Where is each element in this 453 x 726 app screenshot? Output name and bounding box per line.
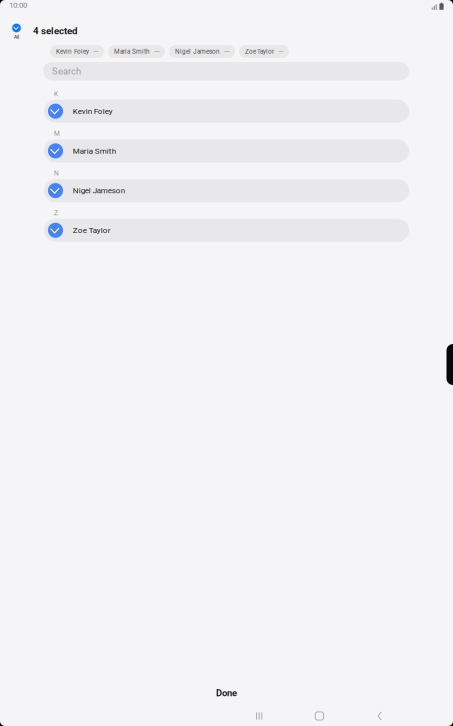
staticText: 4 selected xyxy=(33,25,77,37)
staticText: Search xyxy=(52,66,81,77)
staticText: Zoe Taylor xyxy=(73,226,111,235)
staticText: K xyxy=(54,90,58,98)
button[interactable]: Maria Smith xyxy=(108,45,165,58)
button[interactable]: Zoe Taylor xyxy=(44,219,409,242)
staticText: Nigel Jameson xyxy=(73,186,125,195)
button[interactable]: Done xyxy=(0,676,453,706)
button[interactable]: Recent apps xyxy=(229,706,289,726)
button[interactable]: Zoe Taylor xyxy=(239,45,289,58)
button[interactable]: Home xyxy=(289,706,349,726)
staticText: Done xyxy=(216,687,237,698)
staticText: All xyxy=(14,34,19,40)
button[interactable]: Back xyxy=(349,706,410,726)
button[interactable]: Nigel Jameson xyxy=(44,179,409,202)
button[interactable]: Select all xyxy=(4,13,28,43)
button[interactable]: Kevin Foley xyxy=(50,45,104,58)
staticText: Kevin Foley xyxy=(56,48,89,55)
staticText: M xyxy=(54,130,60,137)
button[interactable]: Maria Smith xyxy=(44,139,409,162)
staticText: Z xyxy=(54,209,58,217)
staticText: Kevin Foley xyxy=(73,106,113,116)
button[interactable]: Search xyxy=(43,62,409,80)
staticText: Zoe Taylor xyxy=(245,48,274,55)
button[interactable]: Nigel Jameson xyxy=(169,45,235,58)
staticText: Nigel Jameson xyxy=(175,48,220,55)
staticText: Maria Smith xyxy=(114,48,150,55)
button[interactable]: Kevin Foley xyxy=(44,100,409,123)
staticText: N xyxy=(54,169,59,177)
staticText: Maria Smith xyxy=(73,146,116,156)
staticText: 10:00 xyxy=(9,0,27,10)
